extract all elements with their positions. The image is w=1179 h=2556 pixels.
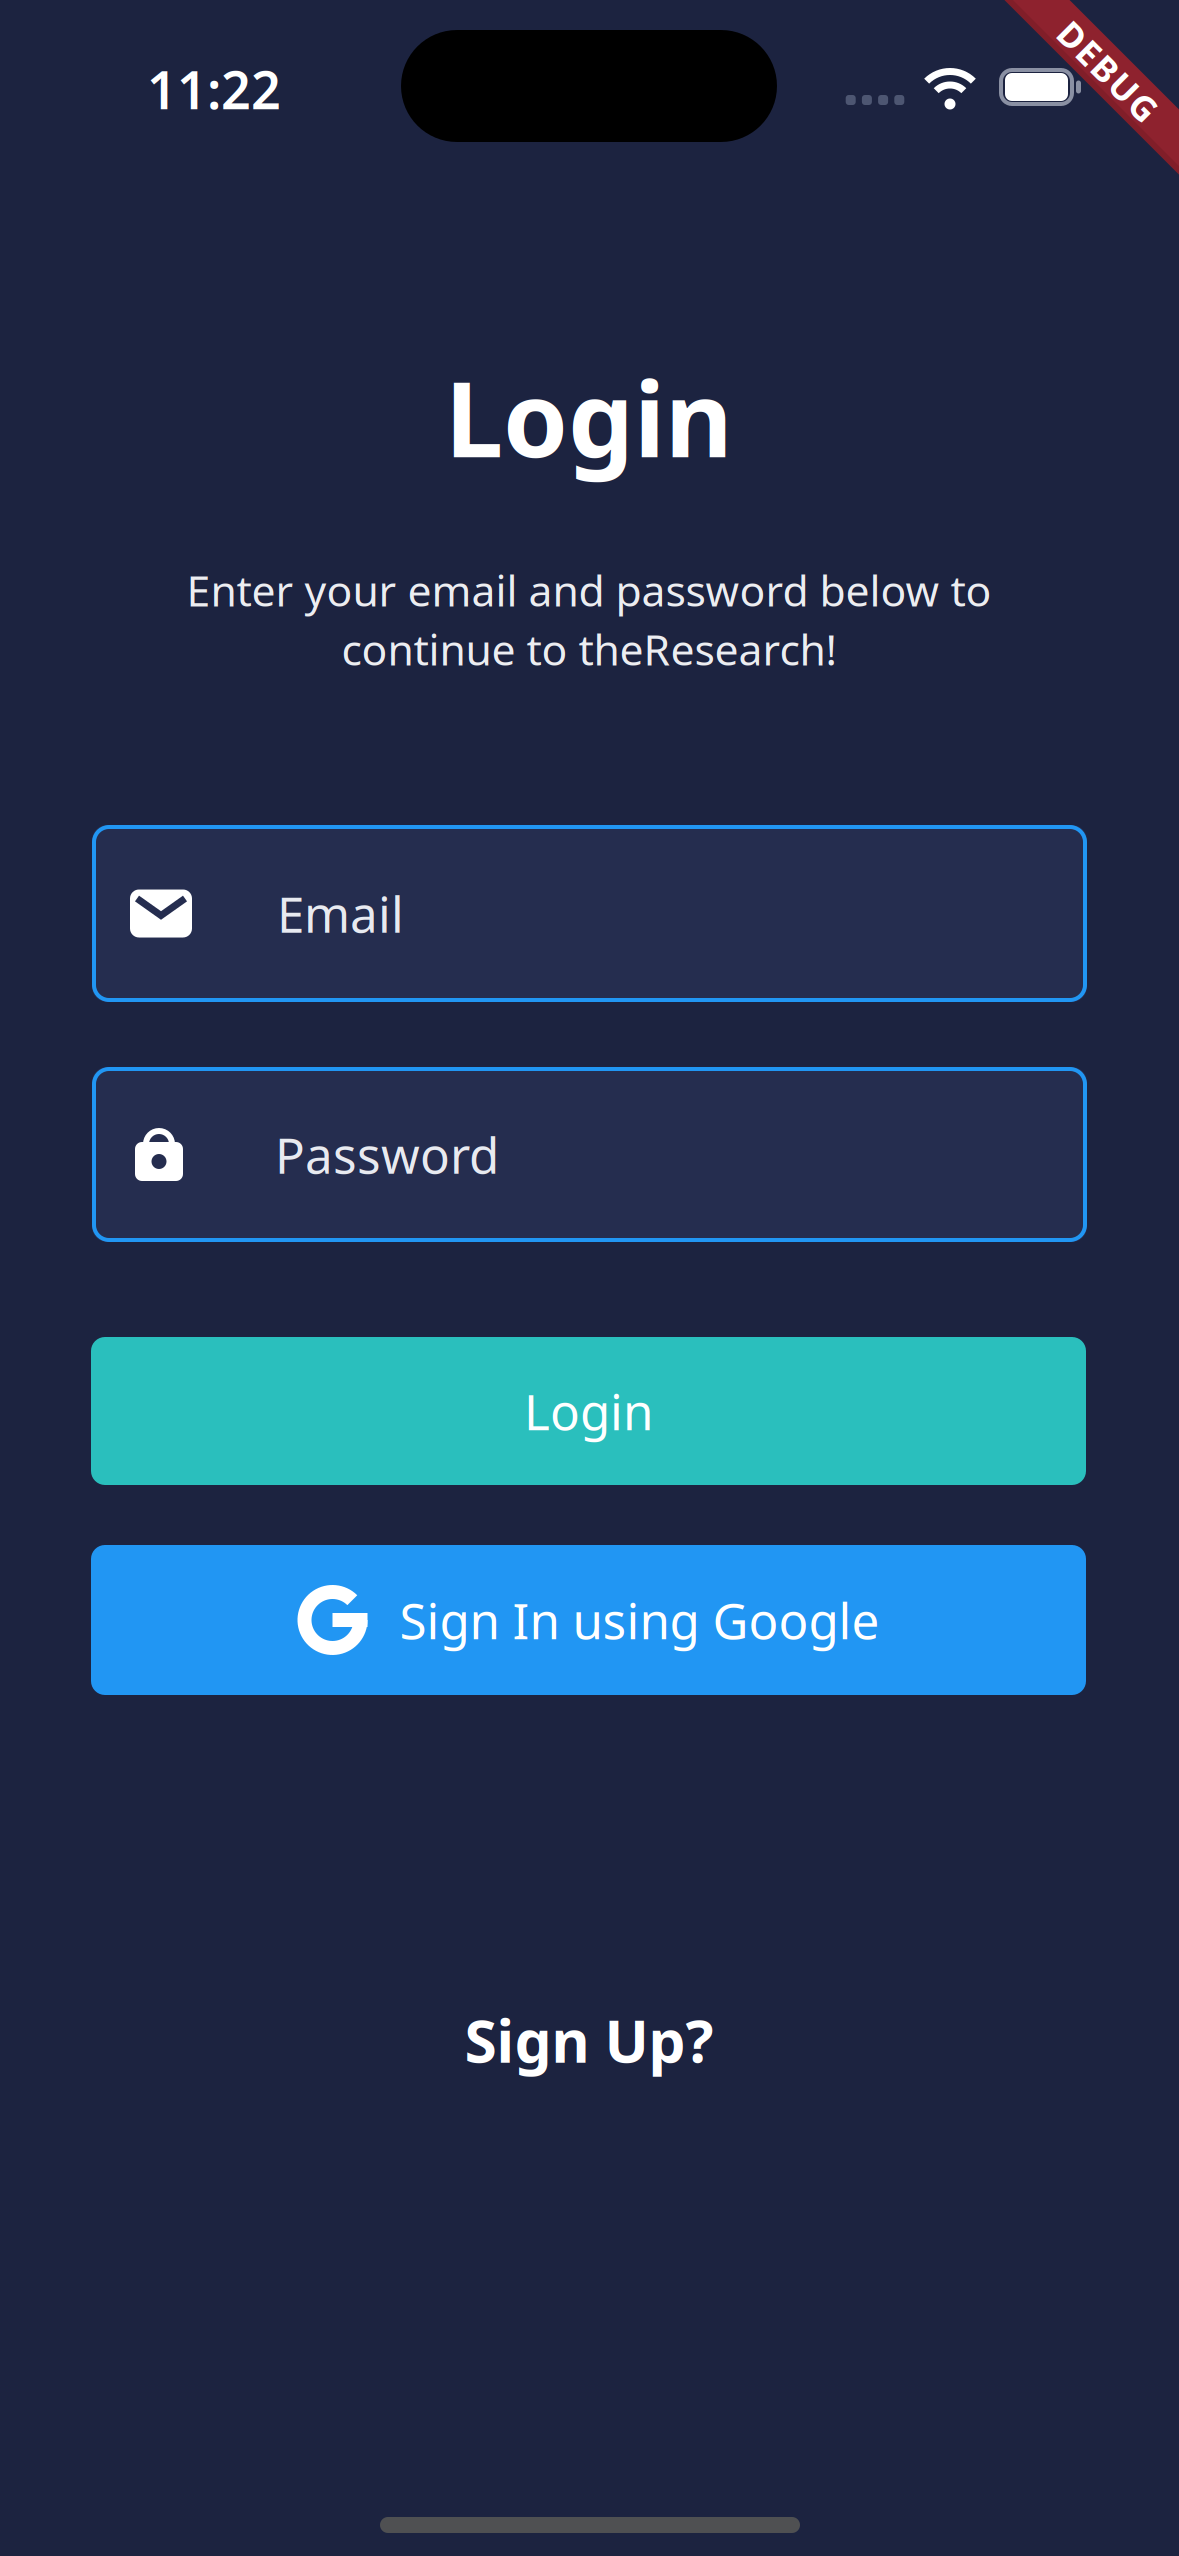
staticText: Email xyxy=(277,881,404,946)
staticText: DEBUG xyxy=(1045,48,1171,94)
staticText: Login xyxy=(445,348,733,486)
button[interactable]: Sign In using Google xyxy=(91,1545,1086,1695)
staticText: Login xyxy=(524,1378,653,1444)
button[interactable]: Email xyxy=(92,825,1087,1002)
staticText: Sign Up? xyxy=(464,2001,713,2079)
button[interactable]: Sign Up? xyxy=(464,2001,713,2079)
button[interactable]: Login xyxy=(91,1337,1086,1485)
staticText: Sign In using Google xyxy=(399,1587,879,1653)
staticText: Enter your email and password below to xyxy=(186,562,991,618)
staticText: 11:22 xyxy=(147,54,281,124)
staticText: continue to theResearch! xyxy=(341,621,836,677)
staticText: Password xyxy=(275,1122,499,1187)
button[interactable]: Password xyxy=(92,1067,1087,1242)
